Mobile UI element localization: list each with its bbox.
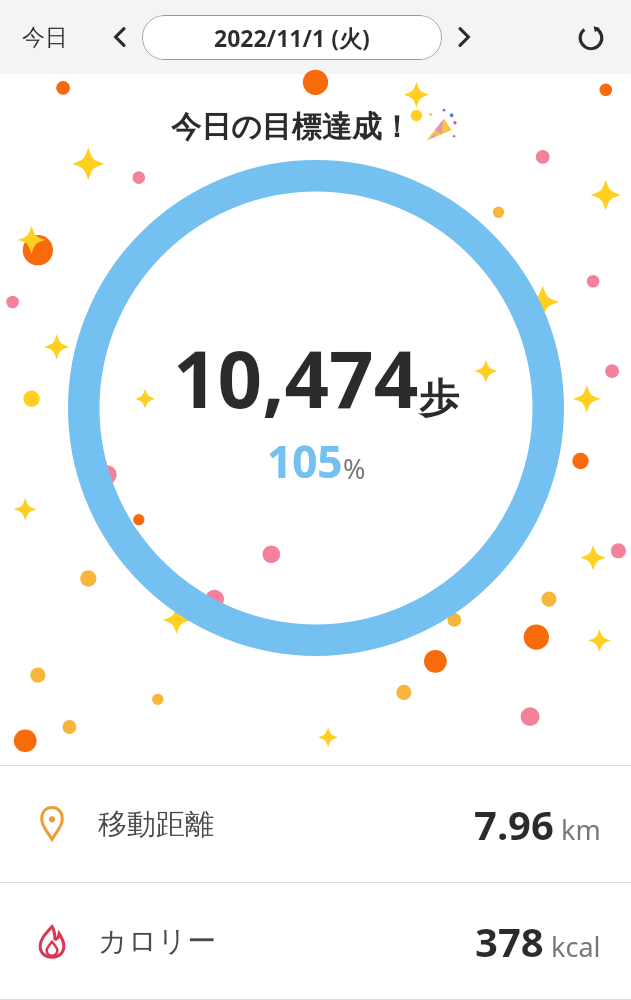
staticText: km xyxy=(561,811,601,848)
staticText: 移動距離 xyxy=(98,806,214,843)
button[interactable]: Previous day xyxy=(100,17,140,57)
button[interactable]: 2022/11/1 (火) xyxy=(142,15,442,60)
staticText: 105 xyxy=(267,431,343,491)
staticText: 2022/11/1 (火) xyxy=(214,22,370,53)
staticText: % xyxy=(343,450,366,487)
staticText: kcal xyxy=(551,928,601,965)
staticText: 今日の目標達成！ xyxy=(171,108,412,146)
button[interactable]: 移動距離 xyxy=(0,766,631,882)
staticText: 10,474 xyxy=(173,325,419,431)
button[interactable]: Refresh xyxy=(567,13,615,61)
staticText: 7.96 xyxy=(474,797,554,851)
staticText: 378 xyxy=(475,914,544,968)
staticText: 歩 xyxy=(419,373,459,423)
button[interactable]: カロリー xyxy=(0,883,631,999)
staticText: カロリー xyxy=(98,923,217,960)
staticText: 今日 xyxy=(22,23,68,52)
button[interactable]: Next day xyxy=(444,17,484,57)
button[interactable]: 今日 xyxy=(16,17,74,58)
